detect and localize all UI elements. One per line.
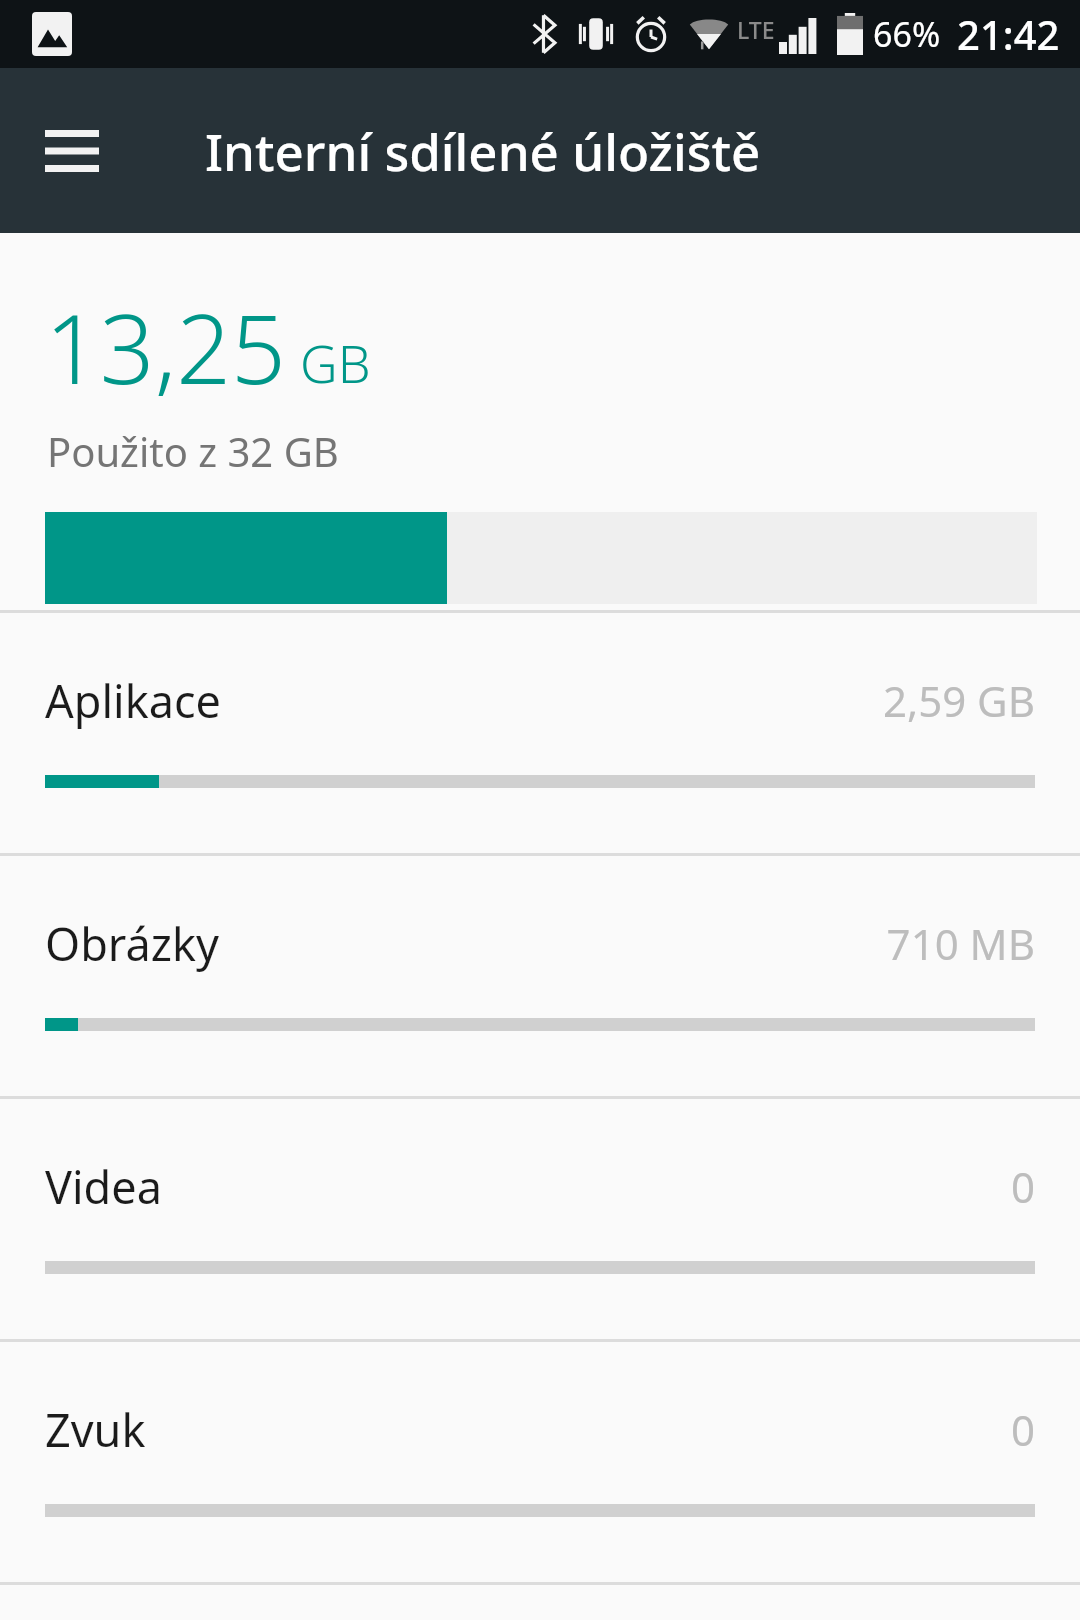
staticText: LTE [737, 14, 775, 45]
staticText: 710 MB [886, 915, 1035, 972]
button[interactable]: Aplikace [0, 613, 1080, 853]
staticText: Interní sdílené úložiště [205, 116, 761, 185]
staticText: 0 [1010, 1401, 1035, 1458]
staticText: Aplikace [45, 670, 221, 731]
button[interactable]: Videa [0, 1099, 1080, 1339]
staticText: Videa [45, 1156, 162, 1217]
staticText: 21:42 [957, 7, 1060, 61]
button[interactable]: 13,25 [0, 233, 1080, 610]
staticText: Obrázky [45, 913, 219, 974]
button[interactable]: Open navigation menu [24, 103, 120, 199]
button[interactable]: Obrázky [0, 856, 1080, 1096]
staticText: Použito z 32 GB [47, 424, 339, 478]
staticText: 0 [1010, 1158, 1035, 1215]
staticText: Zvuk [45, 1399, 146, 1460]
button[interactable]: Zvuk [0, 1342, 1080, 1582]
staticText: 13,25 [45, 281, 286, 412]
staticText: GB [300, 327, 371, 398]
staticText: 2,59 GB [882, 672, 1035, 729]
staticText: 66% [873, 11, 941, 57]
